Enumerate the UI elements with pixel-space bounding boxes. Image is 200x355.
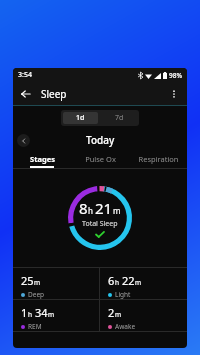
staticText: m xyxy=(48,310,55,319)
button[interactable]: 25 xyxy=(13,268,99,299)
button[interactable]: 6 xyxy=(100,268,187,299)
button[interactable]: Stages xyxy=(13,149,71,168)
staticText: 1d xyxy=(76,113,85,123)
staticText: h xyxy=(88,205,93,216)
button[interactable]: 7d xyxy=(100,110,139,126)
staticText: Awake xyxy=(115,322,136,331)
staticText: h xyxy=(28,310,33,319)
button[interactable]: 1 xyxy=(13,300,99,331)
button[interactable]: Previous day xyxy=(17,134,30,147)
staticText: Pulse Ox xyxy=(85,154,116,164)
staticText: h xyxy=(115,278,120,287)
staticText: 21 xyxy=(95,198,113,218)
staticText: Deep xyxy=(28,290,45,299)
button[interactable]: 1d xyxy=(63,112,98,124)
button[interactable]: More options xyxy=(164,84,184,104)
staticText: 1 xyxy=(21,305,28,320)
staticText: 7d xyxy=(115,113,124,123)
staticText: 8 xyxy=(79,198,88,218)
staticText: 2 xyxy=(108,305,115,320)
button[interactable]: Back xyxy=(16,84,36,104)
staticText: 6 xyxy=(108,273,115,288)
staticText: 98% xyxy=(169,71,182,80)
staticText: Stages xyxy=(30,154,55,164)
staticText: 34 xyxy=(35,305,48,320)
staticText: Today xyxy=(86,133,115,147)
staticText: Total Sleep xyxy=(82,219,118,229)
staticText: m xyxy=(34,278,41,287)
staticText: 3:54 xyxy=(18,70,32,80)
button[interactable]: Respiration xyxy=(129,149,187,168)
staticText: REM xyxy=(28,322,42,331)
staticText: Respiration xyxy=(138,154,179,164)
staticText: Sleep xyxy=(41,87,67,101)
staticText: Light xyxy=(115,290,131,299)
staticText: 25 xyxy=(21,273,34,288)
staticText: m xyxy=(113,205,121,216)
staticText: 22 xyxy=(122,273,135,288)
button[interactable]: 2 xyxy=(100,300,187,331)
button[interactable]: Pulse Ox xyxy=(71,149,129,168)
staticText: m xyxy=(135,278,142,287)
staticText: m xyxy=(115,310,122,319)
